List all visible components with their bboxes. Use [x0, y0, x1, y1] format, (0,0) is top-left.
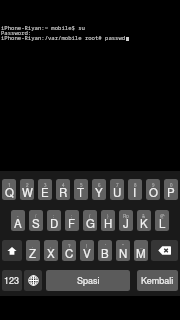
- button[interactable]: 0: [164, 179, 178, 200]
- staticText: K: [140, 215, 148, 231]
- button[interactable]: 2: [20, 179, 34, 200]
- staticText: -: [17, 213, 19, 220]
- staticText: 4: [62, 182, 65, 189]
- staticText: I: [133, 184, 137, 200]
- button[interactable]: 9: [146, 179, 160, 200]
- button[interactable]: Spasi: [46, 270, 130, 291]
- staticText: O: [149, 184, 158, 200]
- staticText: (: [89, 213, 91, 220]
- button[interactable]: &: [137, 210, 151, 231]
- staticText: Z: [29, 245, 37, 261]
- staticText: W: [22, 184, 33, 200]
- button[interactable]: 8: [128, 179, 142, 200]
- staticText: F: [68, 215, 76, 231]
- staticText: !: [86, 243, 88, 250]
- staticText: ): [107, 213, 109, 220]
- staticText: 123: [4, 274, 20, 287]
- button[interactable]: 4: [56, 179, 70, 200]
- staticText: H: [104, 215, 113, 231]
- button[interactable]: 7: [110, 179, 124, 200]
- staticText: C: [65, 245, 74, 261]
- button[interactable]: :: [47, 210, 61, 231]
- staticText: 0: [170, 182, 173, 189]
- staticText: 3: [44, 182, 47, 189]
- staticText: N: [119, 245, 128, 261]
- staticText: ?: [68, 243, 71, 250]
- button[interactable]: 3: [38, 179, 52, 200]
- staticText: 6: [98, 182, 101, 189]
- staticText: A: [14, 215, 22, 231]
- staticText: 2: [26, 182, 29, 189]
- staticText: 8: [134, 182, 137, 189]
- staticText: T: [77, 184, 85, 200]
- staticText: Q: [5, 184, 14, 200]
- staticText: /: [35, 213, 37, 220]
- button[interactable]: Switch keyboard language: [24, 270, 42, 291]
- staticText: D: [50, 215, 59, 231]
- staticText: &: [142, 213, 146, 220]
- staticText: 7: [116, 182, 119, 189]
- staticText: B: [101, 245, 109, 261]
- staticText: :: [53, 213, 55, 220]
- button[interactable]: Backspace: [151, 240, 178, 261]
- staticText: S: [32, 215, 40, 231]
- staticText: ;: [71, 213, 73, 220]
- button[interactable]: 123: [2, 270, 22, 291]
- staticText: V: [83, 245, 91, 261]
- staticText: Kembali: [141, 274, 174, 287]
- staticText: _: [140, 243, 143, 250]
- staticText: J: [123, 215, 129, 231]
- staticText: ': [105, 243, 106, 250]
- button[interactable]: .: [26, 240, 40, 261]
- button[interactable]: -: [11, 210, 25, 231]
- staticText: P: [167, 184, 175, 200]
- button[interactable]: ?: [62, 240, 76, 261]
- staticText: iPhone-Riyan:/var/mobile root# passwd: [1, 34, 126, 42]
- staticText: ,: [50, 243, 52, 250]
- staticText: 1: [8, 182, 11, 189]
- button[interactable]: Shift: [2, 240, 22, 261]
- staticText: M: [136, 245, 146, 261]
- staticText: X: [47, 245, 55, 261]
- button[interactable]: ;: [65, 210, 79, 231]
- staticText: E: [41, 184, 49, 200]
- button[interactable]: Rp: [119, 210, 133, 231]
- staticText: Password:: [1, 29, 32, 37]
- staticText: Rp: [123, 213, 129, 220]
- button[interactable]: _: [134, 240, 148, 261]
- staticText: Spasi: [77, 274, 100, 287]
- staticText: U: [113, 184, 122, 200]
- button[interactable]: 1: [2, 179, 16, 200]
- staticText: Y: [95, 184, 103, 200]
- staticText: 9: [152, 182, 155, 189]
- staticText: ": [122, 243, 124, 250]
- staticText: @: [160, 213, 165, 220]
- button[interactable]: 5: [74, 179, 88, 200]
- button[interactable]: ): [101, 210, 115, 231]
- button[interactable]: ,: [44, 240, 58, 261]
- button[interactable]: ": [116, 240, 130, 261]
- staticText: 5: [80, 182, 83, 189]
- staticText: L: [159, 215, 166, 231]
- button[interactable]: Kembali: [137, 270, 178, 291]
- button[interactable]: 6: [92, 179, 106, 200]
- button[interactable]: !: [80, 240, 94, 261]
- button[interactable]: ': [98, 240, 112, 261]
- staticText: R: [59, 184, 68, 200]
- button[interactable]: @: [155, 210, 169, 231]
- staticText: G: [86, 215, 95, 231]
- staticText: iPhone-Riyan:~ mobile$ su: [1, 24, 85, 32]
- button[interactable]: /: [29, 210, 43, 231]
- button[interactable]: (: [83, 210, 97, 231]
- staticText: .: [32, 243, 34, 250]
